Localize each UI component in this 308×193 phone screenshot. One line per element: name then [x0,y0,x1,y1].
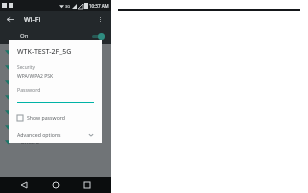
button[interactable]: More options [94,13,107,26]
staticText: WPA/WPA2 PSK [17,73,54,80]
button[interactable]: Back [4,13,17,26]
staticText: 10:37 AM [89,3,109,9]
staticText: Security [17,64,36,71]
button[interactable] [0,59,111,74]
button[interactable]: Back [16,177,32,193]
button[interactable]: DKMAI [0,134,111,149]
button[interactable]: Advanced options [17,130,94,139]
button[interactable] [0,104,111,119]
button[interactable]: WTK-TEST-2F1 [0,119,111,134]
staticText: WTK-TEST-2F_5G [17,47,72,57]
staticText: On [20,32,29,40]
button[interactable] [0,74,111,89]
button[interactable] [0,89,111,104]
button[interactable] [0,44,111,59]
button[interactable]: Show password [17,113,94,122]
staticText: DKMAI [21,138,39,145]
staticText: Password [17,86,41,93]
staticText: Wi-Fi [24,15,41,25]
button[interactable]: On [0,28,111,44]
staticText: Advanced options [17,131,61,138]
button[interactable]: Recent apps [79,177,95,193]
staticText: Show password [27,114,66,121]
button[interactable]: Home [48,177,64,193]
staticText: 3G [65,4,71,9]
